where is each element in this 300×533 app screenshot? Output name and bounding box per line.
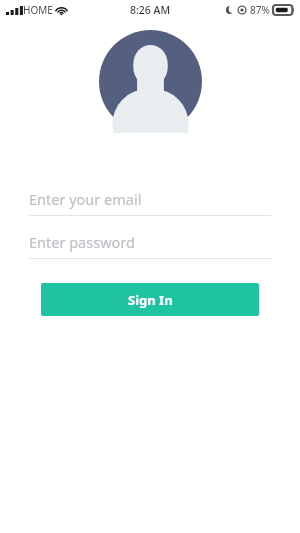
button[interactable]: Enter your email: [29, 187, 271, 216]
staticText: Sign In: [128, 291, 173, 309]
button[interactable]: Sign In: [41, 283, 259, 316]
staticText: 87%: [250, 3, 270, 17]
staticText: HOME: [23, 3, 53, 17]
staticText: Enter your email: [29, 189, 142, 209]
button[interactable]: Enter password: [29, 230, 271, 259]
staticText: Enter password: [29, 232, 135, 252]
staticText: 8:26 AM: [130, 3, 171, 17]
